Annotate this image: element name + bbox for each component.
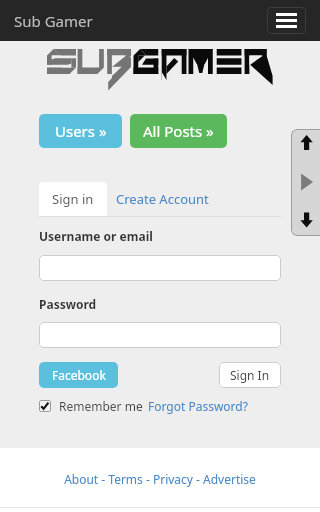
staticText: Username or email [39,228,153,244]
button[interactable]: Scroll [291,129,320,236]
button[interactable]: Forgot Password? [148,398,248,414]
staticText: Remember me [59,398,143,414]
staticText: Facebook [52,367,106,383]
staticText: Sign in [52,190,94,208]
staticText: All Posts » [143,121,214,141]
staticText: Create Account [116,190,209,208]
button[interactable]: Remember me [39,400,51,412]
button[interactable]: Menu [267,7,306,34]
button[interactable]: Sign In [219,362,281,388]
staticText: Sign In [230,367,270,383]
button[interactable]: Create Account [107,182,217,216]
button[interactable]: Users » [39,114,122,148]
button[interactable]: Text field [39,322,281,348]
button[interactable]: About - Terms - Privacy - Advertise [0,471,320,487]
staticText: Sub Gamer [14,11,93,31]
staticText: Password [39,296,97,312]
button[interactable]: Sign in [39,182,107,216]
button[interactable]: All Posts » [130,114,227,148]
staticText: Users » [55,121,107,141]
button[interactable]: Text field [39,255,281,281]
button[interactable]: Facebook [39,362,118,388]
